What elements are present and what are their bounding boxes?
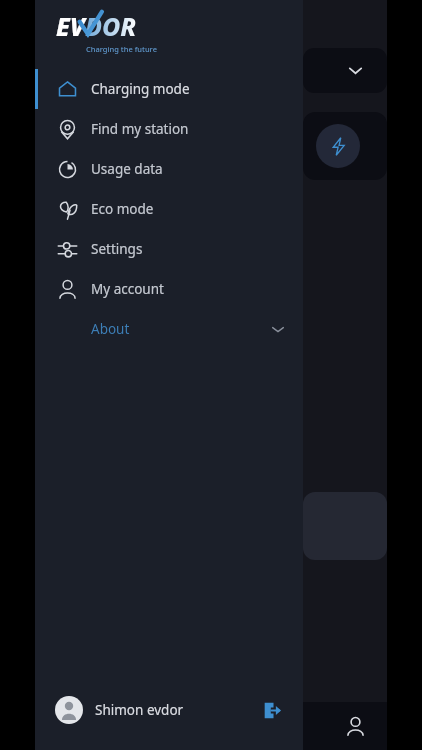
staticText: Settings [91, 240, 143, 258]
staticText: DOR [85, 9, 137, 43]
staticText: Charging the future [86, 44, 157, 54]
button[interactable]: Profile [333, 704, 377, 748]
staticText: About [91, 320, 130, 338]
button[interactable]: About [35, 309, 303, 349]
button[interactable]: Shimon evdor [35, 683, 303, 737]
button[interactable]: Eco mode [35, 189, 303, 229]
staticText: Find my station [91, 120, 189, 138]
staticText: My account [91, 280, 164, 298]
button[interactable]: Log out [259, 697, 285, 723]
button[interactable]: My account [35, 269, 303, 309]
button[interactable]: Expand [303, 48, 387, 93]
staticText: Eco mode [91, 200, 154, 218]
button[interactable]: Charging mode [35, 69, 303, 109]
button[interactable]: Settings [35, 229, 303, 269]
staticText: EV [56, 9, 85, 43]
staticText: Usage data [91, 160, 163, 178]
button[interactable]: Find my station [35, 109, 303, 149]
staticText: Shimon evdor [95, 701, 184, 719]
staticText: Charging mode [91, 80, 190, 98]
button[interactable]: Usage data [35, 149, 303, 189]
